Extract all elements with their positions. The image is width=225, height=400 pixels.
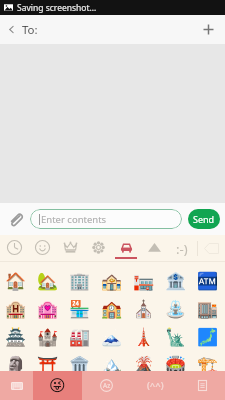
button[interactable]: Send [188, 209, 220, 229]
staticText: 🗾 [197, 327, 219, 347]
button[interactable]: 🏩 [32, 295, 64, 323]
button[interactable]: Add recipient [191, 15, 225, 44]
staticText: 🏟 [165, 355, 187, 375]
staticText: 🏛 [69, 355, 91, 375]
staticText: 🏣 [133, 271, 155, 291]
button[interactable]: Nature [84, 235, 112, 262]
staticText: Send [193, 213, 215, 225]
staticText: 🏩 [37, 299, 59, 319]
button[interactable]: 🏢 [64, 267, 96, 295]
button[interactable]: 🏪 [64, 295, 96, 323]
staticText: Az [103, 381, 111, 390]
button[interactable]: ⛲ [160, 295, 192, 323]
button[interactable]: 🏔 [96, 351, 128, 379]
button[interactable]: 🏡 [32, 267, 64, 295]
staticText: ⛪ [133, 299, 155, 319]
button[interactable]: 🏦 [160, 267, 192, 295]
staticText: 🏯 [5, 327, 27, 347]
staticText: 🏧 [197, 271, 219, 291]
staticText: 😜 [49, 376, 66, 395]
button[interactable]: 🏗 [192, 351, 224, 379]
staticText: 🏔 [101, 355, 123, 375]
staticText: 🏰 [37, 327, 59, 347]
staticText: 🏫 [101, 299, 123, 319]
staticText: 🏢 [69, 271, 91, 291]
staticText: ⛩ [37, 355, 59, 375]
button[interactable]: Keyboard [0, 371, 33, 400]
button[interactable]: 🏭 [64, 323, 96, 351]
button[interactable]: 🗻 [96, 323, 128, 351]
button[interactable]: Backspace [198, 235, 224, 262]
staticText: To: [22, 22, 38, 38]
button[interactable]: Recently used [0, 235, 28, 262]
staticText: 🏡 [37, 271, 59, 291]
staticText: 🏗 [197, 355, 219, 375]
button[interactable]: 🏣 [128, 267, 160, 295]
button[interactable]: Symbols [140, 235, 168, 262]
button[interactable]: ⛩ [32, 351, 64, 379]
button[interactable]: Back [0, 15, 22, 44]
button[interactable]: Text style [82, 371, 131, 400]
staticText: ⛲ [165, 299, 187, 319]
staticText: 🗻 [101, 327, 123, 347]
button[interactable]: 🏛 [64, 351, 96, 379]
button[interactable]: 🏤 [96, 267, 128, 295]
button[interactable]: Places [112, 235, 140, 262]
button[interactable]: Smileys [28, 235, 56, 262]
button[interactable]: 🗿 [0, 351, 32, 379]
staticText: (^^) [147, 379, 164, 392]
button[interactable]: Emoticons [131, 371, 180, 400]
button[interactable]: 🌋 [128, 351, 160, 379]
staticText: 🗼 [133, 327, 155, 347]
button[interactable]: Enter contents [30, 209, 182, 229]
button[interactable]: 🗽 [160, 323, 192, 351]
staticText: :-) [176, 240, 188, 258]
button[interactable]: 🏫 [96, 295, 128, 323]
staticText: 🏦 [165, 271, 187, 291]
staticText: 🏬 [197, 299, 219, 319]
staticText: Enter contents [41, 213, 107, 226]
staticText: 🏤 [101, 271, 123, 291]
staticText: Saving screenshot… [17, 2, 97, 14]
button[interactable]: ⛪ [128, 295, 160, 323]
button[interactable]: Emoji [33, 371, 82, 400]
button[interactable]: 🏨 [0, 295, 32, 323]
staticText: 🗽 [165, 327, 187, 347]
button[interactable]: 🏰 [32, 323, 64, 351]
button[interactable]: Attach file [0, 203, 30, 235]
button[interactable]: 🏧 [192, 267, 224, 295]
button[interactable]: People [56, 235, 84, 262]
staticText: 🏪 [69, 299, 91, 319]
button[interactable]: Emoticons [168, 235, 196, 262]
staticText: 🏨 [5, 299, 27, 319]
button[interactable]: 🏯 [0, 323, 32, 351]
button[interactable]: 🗼 [128, 323, 160, 351]
button[interactable]: 🗾 [192, 323, 224, 351]
staticText: 🌋 [133, 355, 155, 375]
staticText: 🏠 [5, 271, 27, 291]
staticText: 🗿 [5, 355, 27, 375]
button[interactable]: Stickers [180, 371, 225, 400]
button[interactable]: 🏟 [160, 351, 192, 379]
button[interactable]: 🏠 [0, 267, 32, 295]
button[interactable]: 🏬 [192, 295, 224, 323]
staticText: 🏭 [69, 327, 91, 347]
